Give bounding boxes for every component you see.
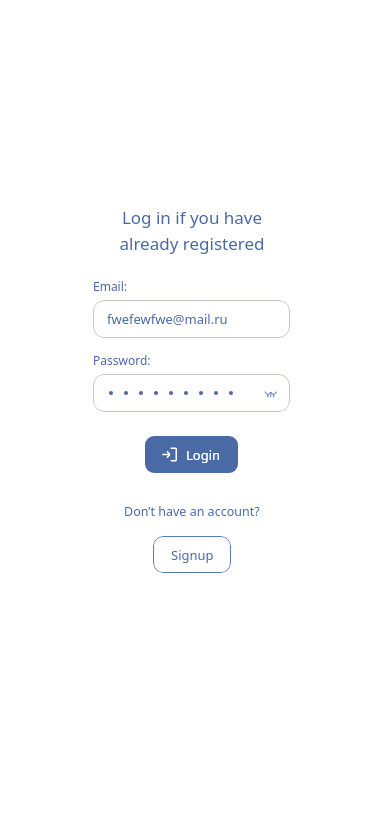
staticText: Email: <box>93 278 128 294</box>
staticText: Log in if you have already registered <box>92 206 292 255</box>
staticText: Login <box>186 446 221 464</box>
staticText: Password: <box>93 352 151 368</box>
staticText: Don’t have an account? <box>124 503 260 520</box>
staticText: fwefewfwe@mail.ru <box>107 310 228 328</box>
button[interactable]: Signup <box>153 536 231 573</box>
staticText: Signup <box>171 546 214 564</box>
button[interactable]: fwefewfwe@mail.ru <box>93 300 290 338</box>
button[interactable]: Login <box>145 436 238 473</box>
button[interactable]: Show password <box>260 383 280 403</box>
button[interactable]: Show password <box>93 374 290 412</box>
